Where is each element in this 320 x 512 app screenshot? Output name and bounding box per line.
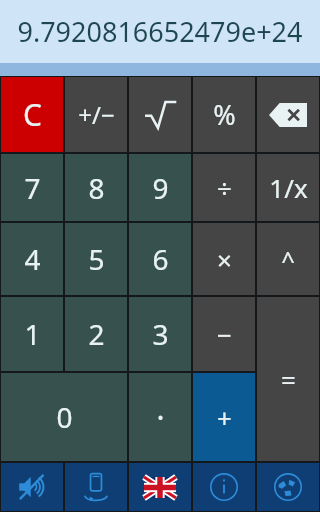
- button[interactable]: 1: [1, 297, 63, 371]
- staticText: ·: [156, 397, 165, 438]
- button[interactable]: Rotate screen: [65, 463, 127, 511]
- button[interactable]: ·: [129, 373, 191, 461]
- button[interactable]: −: [193, 297, 255, 371]
- button[interactable]: 0: [1, 373, 127, 461]
- staticText: +/−: [78, 98, 115, 131]
- staticText: 8: [88, 169, 105, 207]
- button[interactable]: Square root: [129, 77, 191, 152]
- button[interactable]: Backspace: [257, 77, 319, 152]
- button[interactable]: Language: [129, 463, 191, 511]
- button[interactable]: 1/x: [257, 154, 319, 221]
- staticText: ÷: [217, 170, 232, 205]
- staticText: 0: [56, 398, 73, 436]
- button[interactable]: =: [257, 297, 319, 461]
- button[interactable]: 4: [1, 223, 63, 295]
- button[interactable]: 3: [129, 297, 191, 371]
- button[interactable]: ^: [257, 223, 319, 295]
- button[interactable]: 5: [65, 223, 127, 295]
- staticText: 6: [152, 240, 169, 278]
- staticText: =: [281, 362, 296, 397]
- staticText: 4: [24, 240, 41, 278]
- staticText: −: [217, 317, 232, 352]
- button[interactable]: Web: [257, 463, 319, 511]
- staticText: 3: [152, 315, 169, 353]
- staticText: 9: [152, 169, 169, 207]
- button[interactable]: C: [1, 77, 63, 152]
- button[interactable]: +: [193, 373, 255, 461]
- button[interactable]: %: [193, 77, 255, 152]
- button[interactable]: 2: [65, 297, 127, 371]
- staticText: 1/x: [269, 170, 308, 205]
- staticText: +: [217, 400, 232, 435]
- staticText: 7: [24, 169, 41, 207]
- staticText: 5: [88, 240, 105, 278]
- button[interactable]: 9: [129, 154, 191, 221]
- button[interactable]: ×: [193, 223, 255, 295]
- button[interactable]: Mute: [1, 463, 63, 511]
- staticText: 1: [24, 315, 41, 353]
- button[interactable]: +/−: [65, 77, 127, 152]
- button[interactable]: 7: [1, 154, 63, 221]
- button[interactable]: Info: [193, 463, 255, 511]
- staticText: ^: [281, 243, 295, 276]
- button[interactable]: 6: [129, 223, 191, 295]
- staticText: 2: [88, 315, 105, 353]
- button[interactable]: ÷: [193, 154, 255, 221]
- staticText: %: [213, 96, 236, 133]
- staticText: 9.7920816652479e+24: [17, 13, 303, 50]
- button[interactable]: 8: [65, 154, 127, 221]
- staticText: C: [23, 94, 42, 135]
- staticText: ×: [217, 242, 232, 277]
